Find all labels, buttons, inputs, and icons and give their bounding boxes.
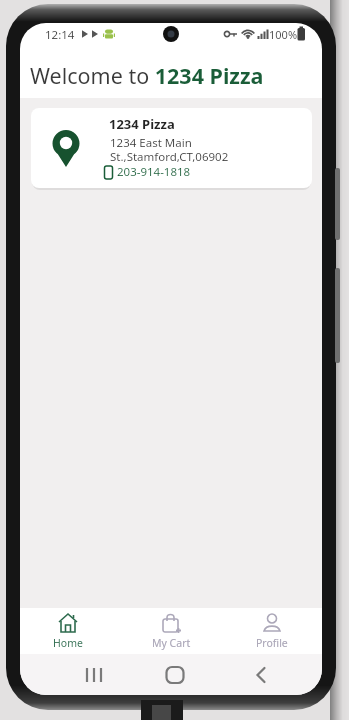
staticText: Home xyxy=(53,636,83,650)
button[interactable]: Profile xyxy=(238,612,306,650)
staticText: My Cart xyxy=(152,636,191,650)
staticText: Profile xyxy=(256,636,288,650)
button[interactable]: 203-914-1818 xyxy=(103,164,191,180)
button[interactable]: My Cart xyxy=(137,612,205,650)
staticText: 203-914-1818 xyxy=(117,164,191,180)
staticText: Welcome to 1234 Pizza xyxy=(30,61,264,90)
button[interactable]: 1234 Pizza xyxy=(31,108,312,188)
button[interactable]: Home xyxy=(34,612,102,650)
staticText: St.,Stamford,CT,06902 xyxy=(110,149,229,165)
staticText: 12:14 xyxy=(45,27,75,43)
staticText: 1234 Pizza xyxy=(109,115,175,133)
staticText: 100% xyxy=(269,27,298,42)
staticText: 1234 East Main xyxy=(110,135,192,151)
